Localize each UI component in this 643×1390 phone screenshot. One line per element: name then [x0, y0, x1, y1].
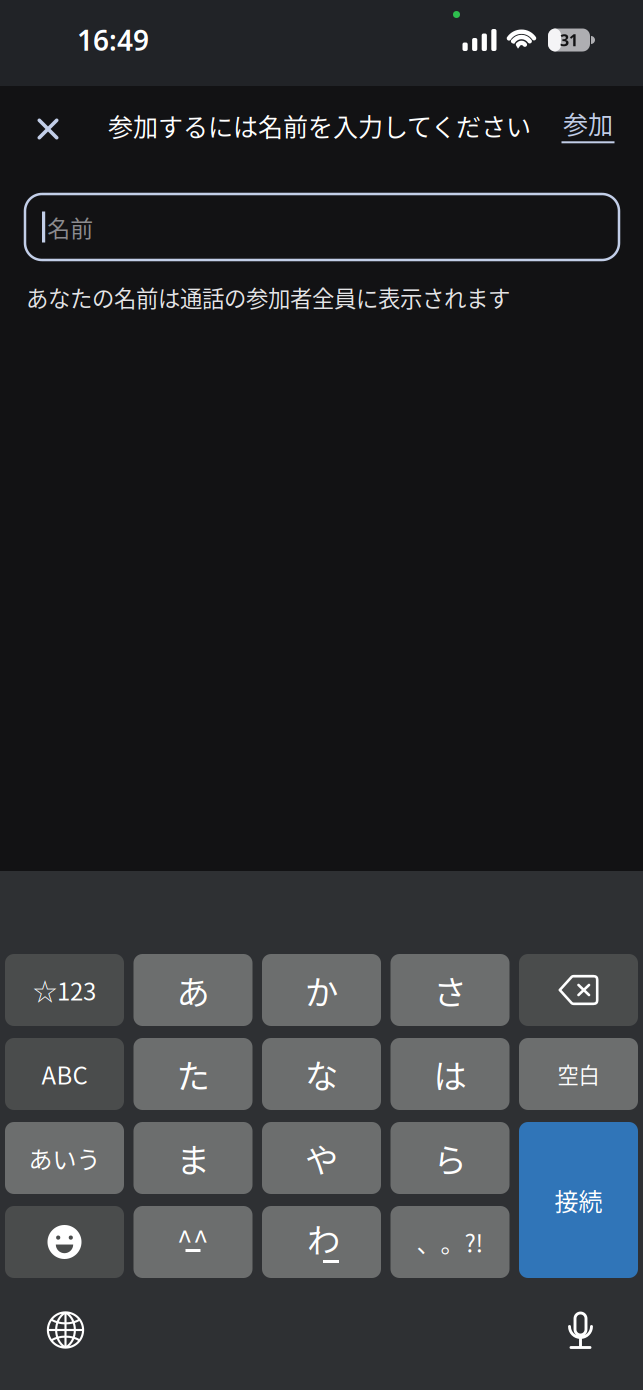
- staticText: 接続: [554, 1183, 602, 1217]
- staticText: か: [305, 966, 338, 1014]
- staticText: 16:49: [77, 21, 149, 59]
- button[interactable]: や: [262, 1122, 381, 1194]
- button[interactable]: Close: [10, 94, 86, 164]
- button[interactable]: ^^: [133, 1206, 252, 1278]
- staticText: ABC: [41, 1057, 87, 1091]
- staticText: は: [433, 1050, 466, 1098]
- staticText: 参加するには名前を入力してください: [108, 107, 531, 144]
- button[interactable]: あ: [133, 954, 252, 1026]
- button[interactable]: 空白: [519, 1038, 638, 1110]
- staticText: た: [176, 1050, 209, 1098]
- button[interactable]: ら: [390, 1122, 509, 1194]
- button[interactable]: Dictation: [540, 1302, 620, 1358]
- button[interactable]: わ: [262, 1206, 381, 1278]
- button[interactable]: 接続: [519, 1122, 638, 1278]
- button[interactable]: Next keyboard: [25, 1302, 105, 1358]
- staticText: さ: [433, 966, 466, 1014]
- staticText: や: [305, 1134, 338, 1182]
- button[interactable]: ま: [133, 1122, 252, 1194]
- staticText: わ: [307, 1214, 340, 1262]
- staticText: 空白: [557, 1059, 599, 1089]
- button[interactable]: た: [133, 1038, 252, 1110]
- button[interactable]: 参加: [547, 105, 629, 153]
- staticText: ^^: [177, 1219, 209, 1259]
- staticText: 、。?!: [416, 1225, 483, 1259]
- staticText: 参加: [563, 105, 613, 141]
- button[interactable]: さ: [390, 954, 509, 1026]
- button[interactable]: あいう: [5, 1122, 124, 1194]
- staticText: ま: [176, 1134, 209, 1182]
- staticText: あなたの名前は通話の参加者全員に表示されます: [26, 281, 510, 313]
- staticText: 31: [560, 29, 578, 51]
- staticText: な: [305, 1050, 338, 1098]
- button[interactable]: な: [262, 1038, 381, 1110]
- staticText: 名前: [47, 210, 93, 244]
- button[interactable]: は: [390, 1038, 509, 1110]
- button[interactable]: ☆123: [5, 954, 124, 1026]
- staticText: ☆123: [33, 973, 96, 1007]
- staticText: ら: [433, 1134, 466, 1182]
- staticText: あいう: [28, 1141, 100, 1175]
- button[interactable]: 、。?!: [390, 1206, 509, 1278]
- button[interactable]: [519, 954, 638, 1026]
- button[interactable]: か: [262, 954, 381, 1026]
- button[interactable]: ABC: [5, 1038, 124, 1110]
- button[interactable]: [5, 1206, 124, 1278]
- staticText: あ: [176, 966, 209, 1014]
